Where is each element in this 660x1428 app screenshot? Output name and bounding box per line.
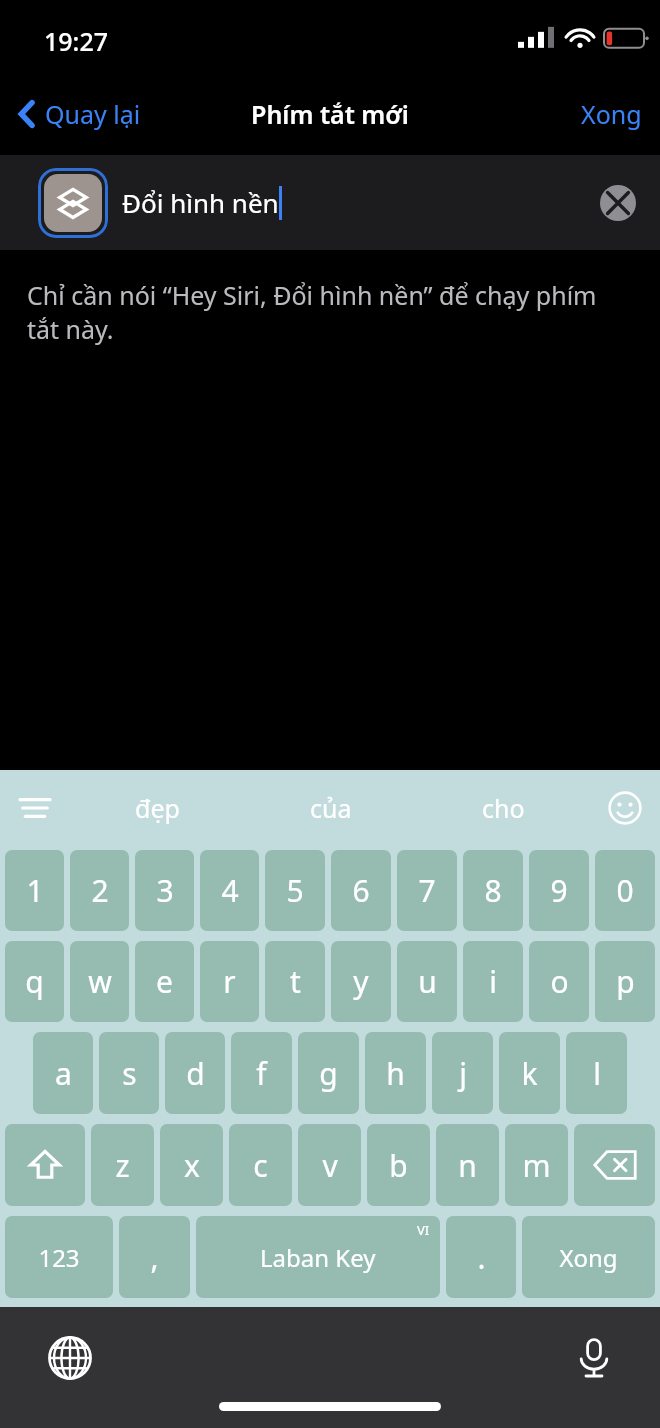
staticText: i bbox=[489, 961, 497, 1002]
button[interactable]: 0 bbox=[595, 850, 655, 931]
button[interactable]: m bbox=[505, 1124, 568, 1206]
staticText: 19:27 bbox=[44, 24, 109, 58]
staticText: VI bbox=[417, 1221, 430, 1239]
staticText: u bbox=[418, 961, 437, 1002]
staticText: g bbox=[319, 1053, 338, 1094]
button[interactable]: s bbox=[99, 1032, 159, 1114]
staticText: 9 bbox=[550, 870, 568, 911]
staticText: Quay lại bbox=[45, 97, 141, 131]
staticText: s bbox=[122, 1053, 137, 1094]
staticText: c bbox=[253, 1145, 268, 1186]
button[interactable]: Biểu tượng phím tắt bbox=[38, 168, 108, 238]
button[interactable]: j bbox=[432, 1032, 493, 1114]
button[interactable]: v bbox=[298, 1124, 361, 1206]
staticText: Xong bbox=[581, 97, 642, 131]
button[interactable]: 3 bbox=[135, 850, 194, 931]
button[interactable]: o bbox=[529, 941, 589, 1022]
button[interactable]: r bbox=[200, 941, 259, 1022]
staticText: h bbox=[386, 1053, 405, 1094]
button[interactable]: Menu bbox=[0, 770, 70, 845]
button[interactable]: đẹp bbox=[70, 770, 244, 845]
button[interactable]: 6 bbox=[331, 850, 391, 931]
staticText: d bbox=[186, 1053, 205, 1094]
staticText: f bbox=[256, 1053, 267, 1094]
button[interactable]: Laban Key bbox=[196, 1216, 440, 1298]
button[interactable]: y bbox=[331, 941, 391, 1022]
button[interactable]: 7 bbox=[397, 850, 457, 931]
staticText: 1 bbox=[26, 870, 44, 911]
button[interactable]: t bbox=[265, 941, 325, 1022]
staticText: 5 bbox=[286, 870, 304, 911]
staticText: o bbox=[550, 961, 569, 1002]
button[interactable]: 2 bbox=[70, 850, 129, 931]
button[interactable]: u bbox=[397, 941, 457, 1022]
button[interactable]: z bbox=[91, 1124, 154, 1206]
button[interactable]: 123 bbox=[5, 1216, 113, 1298]
staticText: q bbox=[25, 961, 44, 1002]
button[interactable]: 9 bbox=[529, 850, 589, 931]
button[interactable]: Xóa lùi bbox=[574, 1124, 655, 1206]
button[interactable]: Nhập bằng giọng nói bbox=[558, 1322, 630, 1394]
button[interactable]: 8 bbox=[463, 850, 523, 931]
staticText: r bbox=[223, 961, 236, 1002]
button[interactable]: h bbox=[365, 1032, 426, 1114]
button[interactable]: l bbox=[566, 1032, 627, 1114]
button[interactable]: x bbox=[160, 1124, 223, 1206]
staticText: z bbox=[115, 1145, 130, 1186]
button[interactable]: , bbox=[119, 1216, 190, 1298]
button[interactable]: g bbox=[298, 1032, 359, 1114]
button[interactable]: c bbox=[229, 1124, 292, 1206]
staticText: của bbox=[310, 791, 352, 825]
staticText: . bbox=[477, 1237, 486, 1278]
button[interactable]: q bbox=[5, 941, 64, 1022]
button[interactable]: 5 bbox=[265, 850, 325, 931]
staticText: v bbox=[322, 1145, 338, 1186]
staticText: b bbox=[389, 1145, 408, 1186]
button[interactable]: cho bbox=[417, 770, 590, 845]
button[interactable]: 4 bbox=[200, 850, 259, 931]
staticText: Laban Key bbox=[260, 1241, 376, 1274]
button[interactable]: d bbox=[165, 1032, 225, 1114]
staticText: đẹp bbox=[135, 791, 180, 825]
staticText: Xong bbox=[559, 1241, 618, 1274]
staticText: k bbox=[521, 1053, 538, 1094]
staticText: t bbox=[290, 961, 301, 1002]
button[interactable]: n bbox=[436, 1124, 499, 1206]
button[interactable]: k bbox=[499, 1032, 560, 1114]
button[interactable]: Quay lại bbox=[0, 89, 153, 139]
staticText: y bbox=[353, 961, 369, 1002]
staticText: 8 bbox=[484, 870, 502, 911]
button[interactable]: w bbox=[70, 941, 129, 1022]
button[interactable]: p bbox=[595, 941, 655, 1022]
button[interactable]: Xóa bbox=[590, 175, 646, 231]
staticText: m bbox=[522, 1145, 551, 1186]
button[interactable]: 1 bbox=[5, 850, 64, 931]
button[interactable]: f bbox=[231, 1032, 292, 1114]
staticText: 4 bbox=[221, 870, 239, 911]
staticText: w bbox=[88, 961, 112, 1002]
button[interactable]: Xong bbox=[522, 1216, 655, 1298]
button[interactable]: b bbox=[367, 1124, 430, 1206]
button[interactable]: e bbox=[135, 941, 194, 1022]
staticText: 7 bbox=[418, 870, 436, 911]
staticText: 123 bbox=[38, 1241, 80, 1274]
button[interactable]: . bbox=[446, 1216, 516, 1298]
staticText: Phím tắt mới bbox=[251, 97, 409, 131]
staticText: 6 bbox=[352, 870, 370, 911]
staticText: Đổi hình nền bbox=[122, 185, 279, 220]
button[interactable]: i bbox=[463, 941, 523, 1022]
staticText: 2 bbox=[91, 870, 109, 911]
staticText: p bbox=[616, 961, 635, 1002]
button[interactable]: a bbox=[33, 1032, 93, 1114]
button[interactable]: Biểu tượng cảm xúc bbox=[590, 770, 660, 845]
staticText: e bbox=[156, 961, 173, 1002]
button[interactable]: Xong bbox=[563, 87, 660, 141]
staticText: j bbox=[459, 1053, 467, 1094]
button[interactable]: của bbox=[244, 770, 417, 845]
staticText: x bbox=[184, 1145, 200, 1186]
button[interactable]: Đổi bàn phím bbox=[34, 1322, 106, 1394]
staticText: 3 bbox=[156, 870, 174, 911]
staticText: a bbox=[55, 1053, 72, 1094]
staticText: n bbox=[458, 1145, 477, 1186]
button[interactable]: Shift bbox=[5, 1124, 85, 1206]
